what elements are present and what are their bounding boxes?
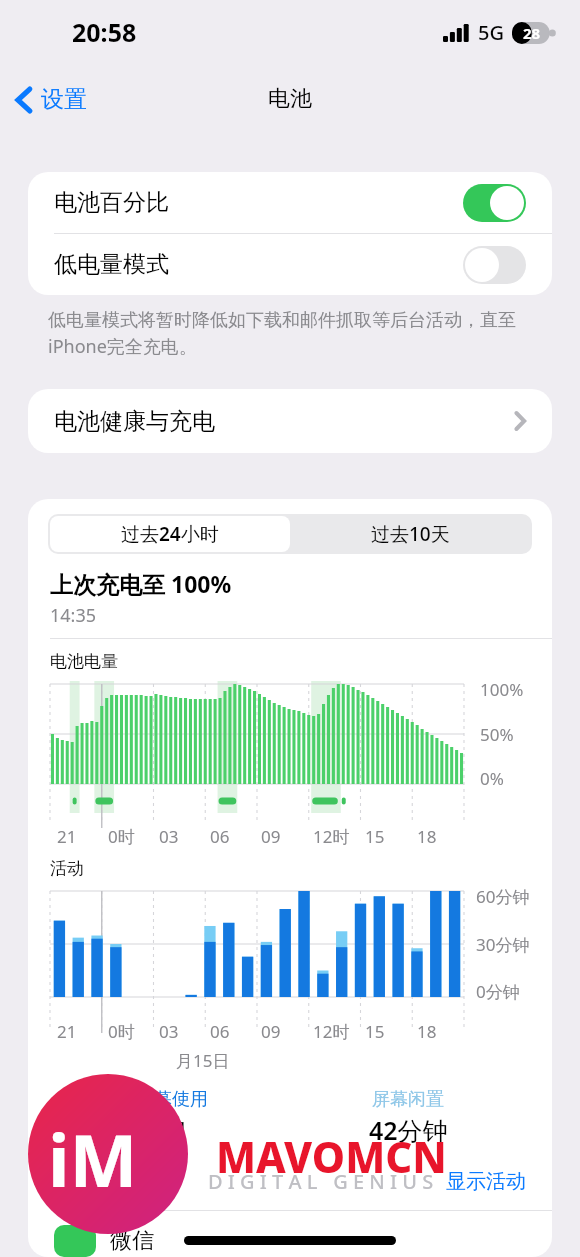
staticText: 微信 (110, 1227, 154, 1255)
button[interactable]: 低电量模式 (463, 246, 526, 284)
button[interactable]: 过去24小时 (50, 516, 290, 552)
staticText: 电池电量 (50, 651, 118, 672)
staticText: 0% (480, 767, 504, 790)
staticText: 18 (417, 825, 437, 848)
staticText: 低电量模式 (54, 250, 169, 279)
staticText: 42分钟 (369, 1113, 448, 1147)
staticText: 09 (261, 1020, 281, 1043)
staticText: 12时 (313, 1020, 350, 1043)
button[interactable]: 过去10天 (290, 516, 530, 552)
staticText: 电池 (268, 85, 312, 113)
staticText: 15 (365, 825, 385, 848)
staticText: 03 (159, 1020, 179, 1043)
staticText: MAVOMCN (216, 1128, 447, 1185)
staticText: 12时 (313, 825, 350, 848)
staticText: D I G I T A L G E N I U S (208, 1168, 434, 1195)
staticText: 28 (523, 23, 541, 43)
button[interactable]: 电池百分比 (463, 184, 526, 222)
staticText: 月15日 (176, 1049, 230, 1072)
staticText: 21 (57, 1020, 77, 1043)
staticText: 屏幕闲置 (372, 1088, 444, 1111)
button[interactable]: 电池百分比 (28, 172, 552, 233)
staticText: 活动 (50, 858, 84, 879)
staticText: 30分钟 (476, 933, 530, 956)
staticText: 06 (210, 825, 230, 848)
staticText: 设置 (41, 85, 87, 114)
button[interactable]: 低电量模式 (28, 234, 552, 295)
staticText: 0时 (108, 1020, 135, 1043)
staticText: 21 (57, 825, 77, 848)
staticText: iM (48, 1110, 138, 1208)
button[interactable]: 设置 (0, 79, 97, 120)
staticText: 50% (480, 723, 514, 746)
staticText: 电池百分比 (54, 188, 169, 217)
staticText: 低电量模式将暂时降低如下载和邮件抓取等后台活动，直至 iPhone完全充电。 (48, 309, 516, 359)
staticText: 电池健康与充电 (54, 407, 215, 436)
staticText: 14:35 (50, 603, 97, 628)
button[interactable]: 显示活动 (446, 1165, 552, 1198)
staticText: 06 (210, 1020, 230, 1043)
staticText: 03 (159, 825, 179, 848)
staticText: 上次充电至 100% (50, 568, 232, 599)
staticText: 20:58 (72, 15, 137, 49)
staticText: 过去10天 (371, 521, 450, 547)
staticText: 18 (417, 1020, 437, 1043)
staticText: 100% (480, 678, 524, 701)
staticText: 09 (261, 825, 281, 848)
staticText: 5G (478, 19, 504, 46)
staticText: 60分钟 (476, 885, 530, 908)
staticText: 过去24小时 (121, 521, 219, 547)
staticText: 15 (365, 1020, 385, 1043)
staticText: 0时 (108, 825, 135, 848)
button[interactable]: 电池健康与充电 (28, 389, 552, 453)
staticText: 0分钟 (476, 980, 520, 1003)
staticText: 钟 (160, 1113, 185, 1144)
staticText: 屏幕使用 (136, 1088, 208, 1111)
